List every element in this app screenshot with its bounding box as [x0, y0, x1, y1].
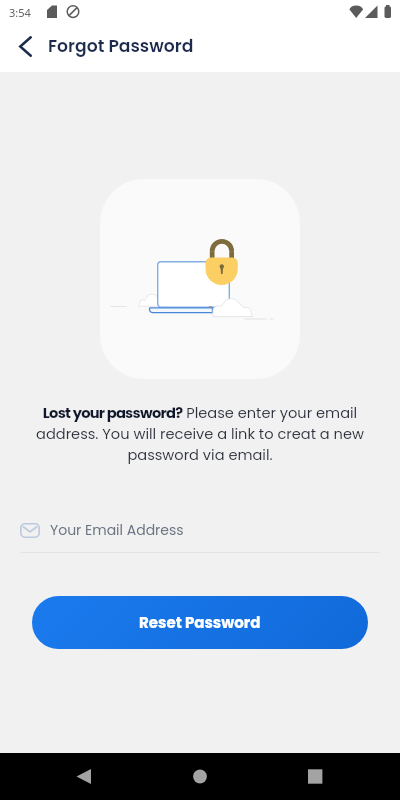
staticText: Forgot Password	[48, 34, 194, 58]
button[interactable]: Your Email Address	[20, 514, 380, 546]
button[interactable]: Back	[0, 22, 48, 70]
staticText: Reset Password	[139, 612, 261, 633]
staticText: 3:54	[9, 5, 31, 20]
button[interactable]: Reset Password	[32, 596, 368, 649]
staticText: Your Email Address	[50, 520, 184, 540]
staticText: Lost your password? Please enter your em…	[18, 403, 382, 465]
